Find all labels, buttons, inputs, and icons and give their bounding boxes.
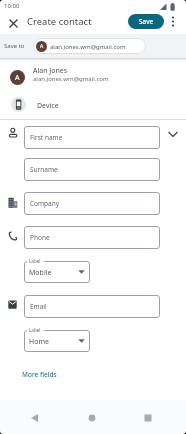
button[interactable]: More fields bbox=[22, 370, 57, 379]
staticText: Company bbox=[30, 199, 60, 208]
button[interactable]: Phone bbox=[24, 226, 160, 249]
button[interactable]: Surname bbox=[24, 158, 160, 181]
button[interactable] bbox=[162, 124, 186, 148]
staticText: Alan Jones bbox=[33, 66, 68, 76]
button[interactable]: Save bbox=[128, 14, 164, 29]
staticText: A bbox=[40, 43, 44, 50]
staticText: alan.jones.wm@gmail.com bbox=[33, 75, 109, 83]
staticText: A bbox=[15, 73, 20, 83]
staticText: Label bbox=[29, 258, 41, 264]
button[interactable]: A bbox=[0, 62, 186, 93]
staticText: Save bbox=[139, 17, 154, 26]
staticText: alan.jones.wm@gmail.com bbox=[50, 43, 126, 51]
staticText: Device bbox=[37, 101, 59, 111]
staticText: Surname bbox=[30, 165, 58, 174]
staticText: 10:00 bbox=[4, 2, 20, 10]
button[interactable] bbox=[24, 261, 90, 283]
button[interactable] bbox=[6, 16, 21, 31]
staticText: First name bbox=[30, 133, 63, 142]
staticText: Mobile bbox=[29, 268, 52, 278]
button[interactable] bbox=[133, 406, 163, 430]
button[interactable]: First name bbox=[24, 126, 160, 149]
button[interactable] bbox=[20, 406, 50, 430]
staticText: Label bbox=[29, 327, 41, 333]
staticText: Phone bbox=[30, 233, 50, 242]
button[interactable]: Company bbox=[24, 192, 160, 215]
button[interactable]: Device bbox=[0, 93, 186, 119]
button[interactable]: Email bbox=[24, 295, 160, 318]
button[interactable]: A bbox=[33, 38, 146, 54]
staticText: Create contact bbox=[27, 15, 92, 28]
staticText: Save to bbox=[4, 42, 25, 50]
button[interactable] bbox=[167, 14, 179, 29]
staticText: Email bbox=[30, 302, 47, 311]
button[interactable] bbox=[77, 406, 107, 430]
button[interactable] bbox=[24, 330, 90, 352]
staticText: Home bbox=[29, 337, 49, 347]
